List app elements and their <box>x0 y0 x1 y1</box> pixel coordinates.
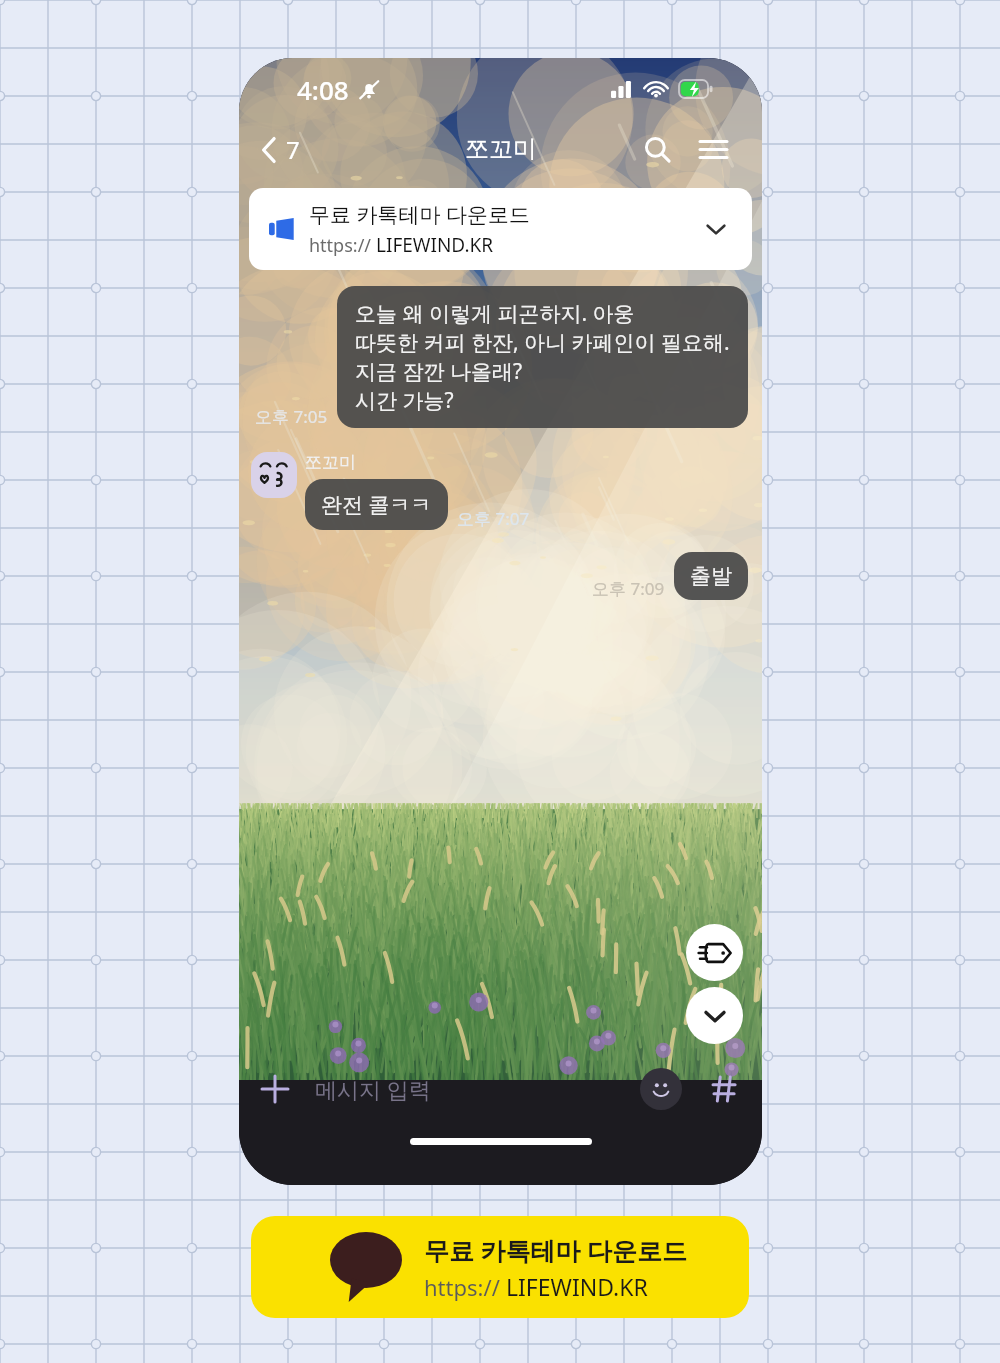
staticText: 무료 카톡테마 다운로드 <box>309 200 530 229</box>
button[interactable]: 7 <box>255 129 306 170</box>
button[interactable]: 프로필 사진 <box>251 452 297 498</box>
staticText: https:// <box>424 1272 506 1302</box>
staticText: 따뜻한 커피 한잔, 아니 카페인이 필요해. <box>355 328 730 357</box>
staticText: https:// <box>309 233 376 258</box>
staticText: 출발 <box>690 563 732 589</box>
button[interactable]: 예약 메시지 <box>686 924 743 981</box>
staticText: 오후 7:09 <box>592 577 665 600</box>
staticText: 메시지 입력 <box>315 1074 431 1104</box>
button[interactable]: 메뉴 <box>692 128 734 170</box>
staticText: 시간 가능? <box>355 386 454 415</box>
button[interactable]: 이모티콘 <box>640 1068 682 1110</box>
button[interactable]: 추가 <box>253 1067 297 1111</box>
staticText: LIFEWIND.KR <box>506 1271 648 1302</box>
staticText: LIFEWIND.KR <box>376 232 494 258</box>
button[interactable]: 완전 콜ㅋㅋ <box>305 479 448 530</box>
button[interactable]: 무료 카톡테마 다운로드 <box>251 1216 749 1318</box>
staticText: 오후 7:07 <box>457 507 530 530</box>
button[interactable]: 아래로 스크롤 <box>686 987 743 1044</box>
staticText: 지금 잠깐 나올래? <box>355 357 523 386</box>
staticText: 쪼꼬미 <box>465 134 537 164</box>
button[interactable]: 샵검색 <box>704 1068 746 1110</box>
button[interactable]: 출발 <box>674 552 748 600</box>
staticText: 7 <box>286 133 300 166</box>
staticText: 4:08 <box>297 72 349 107</box>
button[interactable]: 펼치기 <box>694 207 738 251</box>
staticText: 쪼꼬미 <box>305 452 356 473</box>
button[interactable]: 오늘 왜 이렇게 피곤하지. 아웅 <box>337 286 748 428</box>
staticText: 무료 카톡테마 다운로드 <box>424 1233 688 1267</box>
staticText: 완전 콜ㅋㅋ <box>321 490 432 519</box>
staticText: 오후 7:05 <box>255 405 328 428</box>
button[interactable]: 무료 카톡테마 다운로드 <box>249 188 752 270</box>
staticText: 오늘 왜 이렇게 피곤하지. 아웅 <box>355 299 635 328</box>
button[interactable]: 검색 <box>636 128 678 170</box>
